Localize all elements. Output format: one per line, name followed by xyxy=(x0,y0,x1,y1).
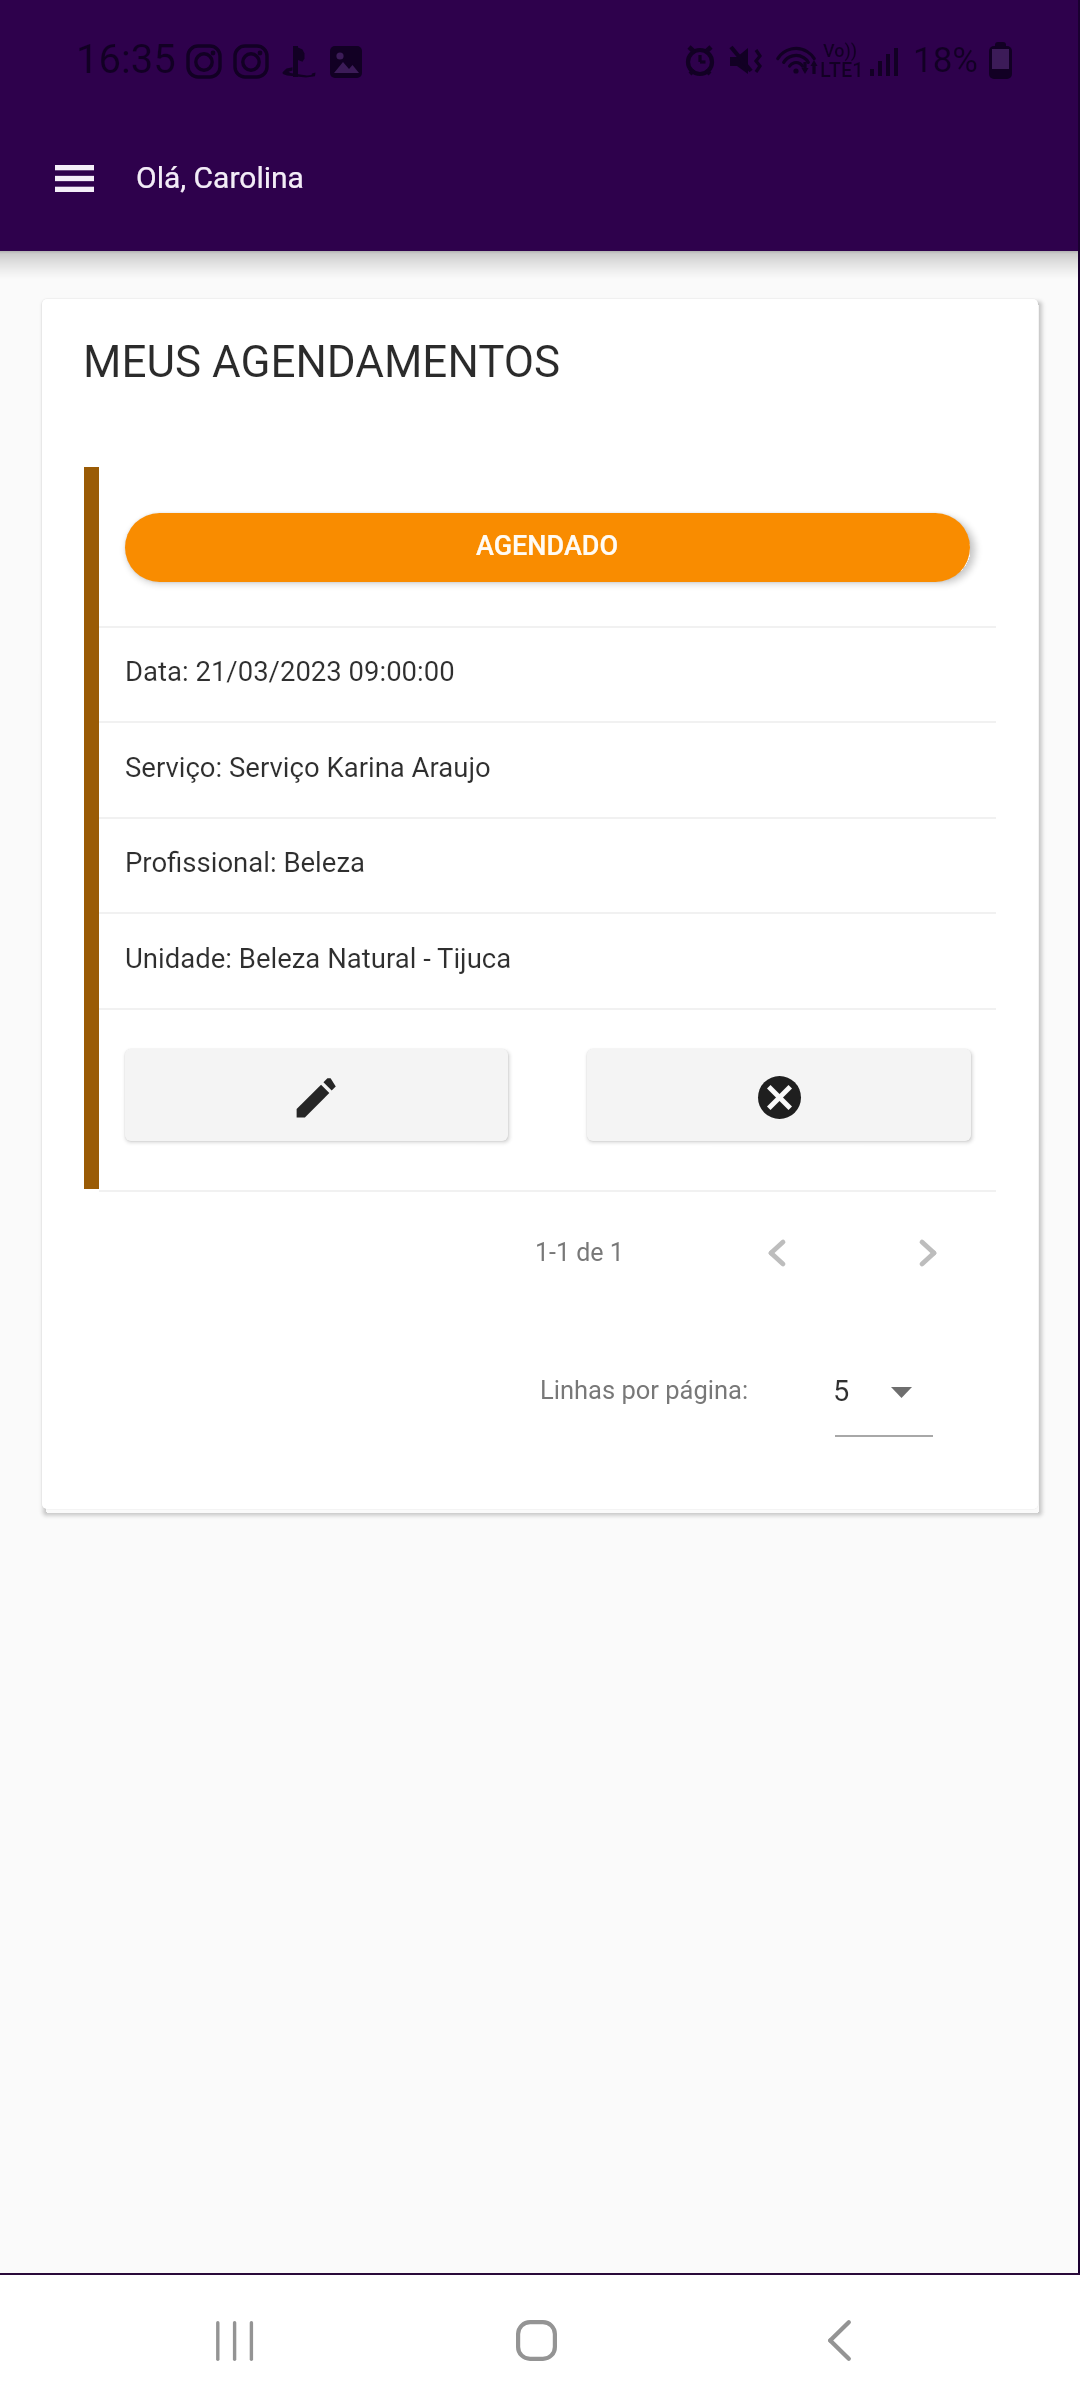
button[interactable]: Início xyxy=(416,2278,656,2400)
staticText: LTE1 xyxy=(820,58,864,81)
staticText: 18% xyxy=(913,40,978,81)
staticText: 16:35 xyxy=(76,36,176,83)
button[interactable]: Profissional: Beleza xyxy=(99,817,1038,912)
staticText: MEUS AGENDAMENTOS xyxy=(83,336,561,388)
staticText: 5 xyxy=(833,1374,850,1408)
button[interactable]: Página anterior xyxy=(732,1208,822,1298)
button[interactable]: Menu xyxy=(19,123,129,233)
staticText: Unidade: Beleza Natural - Tijuca xyxy=(125,942,512,974)
button[interactable]: AGENDADO xyxy=(125,513,970,582)
button[interactable]: Unidade: Beleza Natural - Tijuca xyxy=(99,912,1038,1008)
staticText: Vo)) xyxy=(823,40,858,61)
button[interactable]: Próxima página xyxy=(883,1208,973,1298)
button[interactable]: Data: 21/03/2023 09:00:00 xyxy=(99,626,1038,721)
button[interactable]: Recentes xyxy=(114,2278,354,2400)
staticText: 1-1 de 1 xyxy=(535,1238,624,1267)
button[interactable]: Voltar xyxy=(719,2278,959,2400)
staticText: Linhas por página: xyxy=(540,1375,749,1405)
button[interactable]: Linhas por página xyxy=(820,1362,940,1440)
staticText: Profissional: Beleza xyxy=(125,846,365,878)
staticText: AGENDADO xyxy=(476,530,619,562)
button[interactable]: Cancelar xyxy=(587,1049,971,1141)
button[interactable]: Editar xyxy=(125,1049,508,1141)
staticText: Serviço: Serviço Karina Araujo xyxy=(125,751,491,783)
staticText: Data: 21/03/2023 09:00:00 xyxy=(125,655,455,687)
button[interactable]: Serviço: Serviço Karina Araujo xyxy=(99,721,1038,817)
staticText: Olá, Carolina xyxy=(136,160,304,195)
